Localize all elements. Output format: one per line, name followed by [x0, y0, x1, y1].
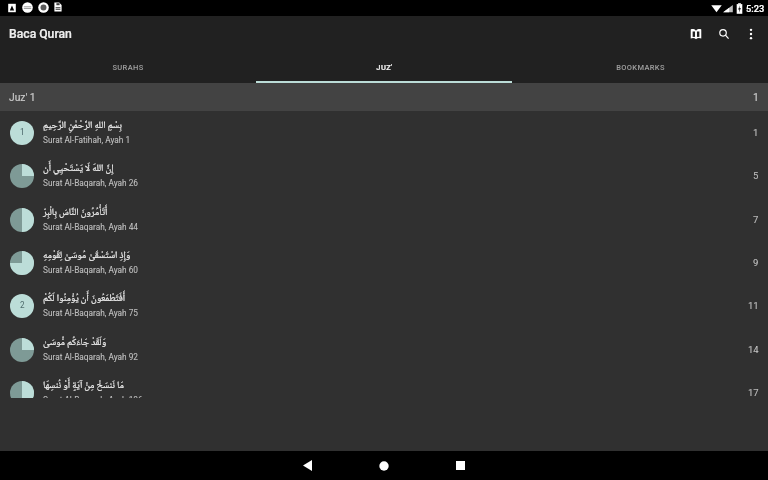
staticText: Surat Al-Fatihah, Ayah 1: [43, 135, 131, 145]
staticText: بِسْمِ اللهِ الرَّحْمٰنِ الرَّحِيمِ: [43, 118, 122, 135]
staticText: 5: [753, 170, 759, 181]
button[interactable]: مَا نَنسَخْ مِنْ آيَةٍ أَوْ نُنسِهَا: [0, 371, 768, 398]
staticText: مَا نَنسَخْ مِنْ آيَةٍ أَوْ نُنسِهَا: [43, 378, 124, 395]
button[interactable]: Back: [269, 451, 345, 480]
staticText: إِنَّ اللهَ لَا يَسْتَحْيِي أَن: [43, 161, 114, 178]
staticText: أَتَأْمُرُونَ النَّاسَ بِالْبِرّ: [43, 205, 108, 222]
staticText: SURAHS: [112, 63, 144, 72]
staticText: JUZ': [376, 63, 393, 72]
button[interactable]: وَإِذِ اسْتَسْقَىٰ مُوسَىٰ لِقَوْمِهِ: [0, 241, 768, 284]
staticText: 11: [748, 300, 759, 311]
button[interactable]: SURAHS: [0, 52, 256, 83]
staticText: Surat Al-Baqarah, Ayah 26: [43, 178, 139, 188]
staticText: أَفَتَطْمَعُونَ أَن يُؤْمِنُوا لَكُمْ: [43, 291, 126, 308]
button[interactable]: أَتَأْمُرُونَ النَّاسَ بِالْبِرّ: [0, 198, 768, 241]
button[interactable]: Last read: [682, 17, 710, 50]
button[interactable]: Home: [345, 451, 422, 480]
staticText: 1: [20, 127, 25, 137]
staticText: وَإِذِ اسْتَسْقَىٰ مُوسَىٰ لِقَوْمِهِ: [43, 248, 131, 265]
button[interactable]: 1: [0, 111, 768, 154]
staticText: Surat Al-Baqarah, Ayah 75: [43, 308, 139, 318]
staticText: Surat Al-Baqarah, Ayah 92: [43, 352, 139, 362]
staticText: وَلَقَدْ جَاءَكُم مُّوسَىٰ: [43, 335, 107, 352]
staticText: Juz' 1: [9, 91, 36, 103]
button[interactable]: إِنَّ اللهَ لَا يَسْتَحْيِي أَن: [0, 154, 768, 197]
staticText: 17: [748, 387, 759, 398]
staticText: 5:23: [746, 3, 765, 14]
staticText: Surat Al-Baqarah, Ayah 106: [43, 395, 143, 398]
staticText: Surat Al-Baqarah, Ayah 60: [43, 265, 139, 275]
button[interactable]: Recents: [422, 451, 499, 480]
staticText: 1: [753, 127, 759, 138]
button[interactable]: Search: [710, 17, 738, 50]
staticText: 7: [753, 214, 759, 225]
button[interactable]: More options: [737, 17, 764, 50]
button[interactable]: JUZ': [256, 52, 512, 83]
button[interactable]: BOOKMARKS: [512, 52, 768, 83]
staticText: Baca Quran: [9, 27, 72, 41]
staticText: 2: [20, 300, 25, 310]
staticText: BOOKMARKS: [616, 63, 665, 72]
button[interactable]: 2: [0, 284, 768, 327]
button[interactable]: وَلَقَدْ جَاءَكُم مُّوسَىٰ: [0, 328, 768, 371]
staticText: 14: [748, 344, 759, 355]
staticText: 1: [753, 91, 759, 103]
staticText: 9: [753, 257, 759, 268]
staticText: Surat Al-Baqarah, Ayah 44: [43, 222, 139, 232]
